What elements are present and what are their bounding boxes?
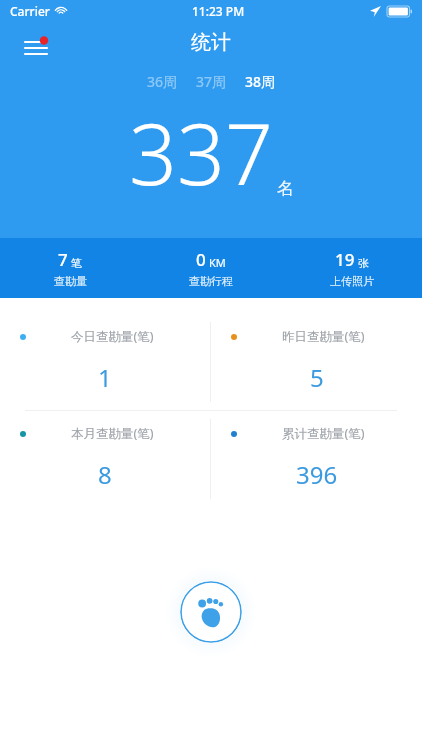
button[interactable]: Start survey footprint	[165, 566, 257, 658]
staticText: 累计查勘量(笔)	[282, 425, 365, 442]
staticText: Carrier	[10, 3, 50, 19]
staticText: 统计	[0, 30, 422, 55]
staticText: 0	[196, 248, 206, 271]
button[interactable]: 本月查勘量(笔)	[0, 411, 210, 507]
button[interactable]: 昨日查勘量(笔)	[211, 314, 422, 410]
button[interactable]: 19	[281, 238, 422, 298]
staticText: 笔	[71, 256, 82, 270]
staticText: 名	[277, 178, 294, 199]
button[interactable]: 36周	[144, 70, 181, 93]
staticText: 查勘量	[54, 274, 87, 288]
staticText: 1	[98, 361, 112, 394]
button[interactable]: 今日查勘量(笔)	[0, 314, 210, 410]
staticText: 今日查勘量(笔)	[71, 328, 154, 345]
staticText: 36周	[147, 72, 178, 91]
button[interactable]: 37周	[193, 70, 230, 93]
button[interactable]: 38周	[242, 70, 279, 93]
staticText: 昨日查勘量(笔)	[282, 328, 365, 345]
staticText: 19	[335, 248, 355, 271]
staticText: 张	[358, 256, 369, 270]
staticText: 11:23 PM	[192, 3, 245, 19]
staticText: 396	[296, 458, 338, 491]
staticText: 上传照片	[330, 274, 374, 288]
staticText: 37周	[196, 72, 227, 91]
staticText: 337	[129, 95, 273, 209]
staticText: 7	[58, 248, 68, 271]
staticText: 38周	[245, 72, 276, 91]
button[interactable]: Menu	[14, 26, 58, 70]
staticText: KM	[209, 255, 226, 270]
staticText: 8	[98, 458, 112, 491]
button[interactable]: 0	[140, 238, 281, 298]
button[interactable]: 累计查勘量(笔)	[211, 411, 422, 507]
button[interactable]: 7	[0, 238, 140, 298]
staticText: 5	[310, 361, 324, 394]
staticText: 本月查勘量(笔)	[71, 425, 154, 442]
staticText: 查勘行程	[189, 274, 233, 288]
